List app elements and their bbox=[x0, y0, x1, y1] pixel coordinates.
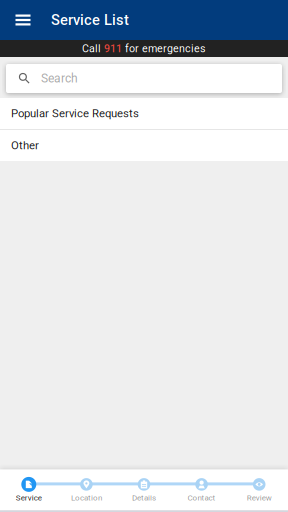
button[interactable]: Popular Service Requests bbox=[0, 98, 288, 129]
staticText: Contact bbox=[188, 493, 216, 502]
button[interactable]: Review bbox=[230, 476, 288, 509]
staticText: Details bbox=[132, 493, 156, 502]
button[interactable]: Search bbox=[6, 64, 282, 93]
button[interactable]: Menu bbox=[0, 0, 46, 40]
staticText: Search bbox=[41, 71, 78, 86]
button[interactable]: Details bbox=[115, 476, 173, 509]
button[interactable]: Contact bbox=[173, 476, 230, 509]
staticText: Call bbox=[82, 42, 104, 55]
staticText: Location bbox=[71, 493, 102, 502]
button[interactable]: Service bbox=[0, 476, 58, 509]
staticText: Review bbox=[247, 493, 272, 502]
staticText: for emergencies bbox=[122, 42, 206, 55]
staticText: Service List bbox=[51, 11, 129, 29]
button[interactable]: Location bbox=[58, 476, 115, 509]
staticText: 911 bbox=[104, 42, 122, 55]
button[interactable]: Other bbox=[0, 130, 288, 161]
staticText: Service bbox=[16, 493, 42, 502]
staticText: Popular Service Requests bbox=[11, 107, 139, 120]
staticText: Other bbox=[11, 139, 39, 152]
